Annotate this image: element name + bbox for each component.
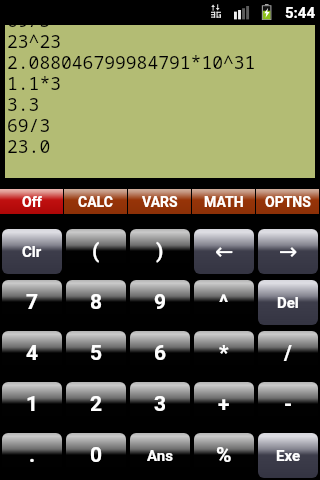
other: Battery charging [261,4,273,20]
button[interactable]: VARS [128,189,191,214]
button[interactable]: 3 [130,382,190,427]
staticText: Clr [22,243,42,261]
staticText: 3 [154,392,167,417]
button[interactable]: . [2,433,62,478]
staticText: ← [215,239,234,265]
button[interactable]: OPTNS [256,189,319,214]
button[interactable]: Off [0,189,63,214]
staticText: % [216,443,232,468]
button[interactable]: % [194,433,254,478]
staticText: - [284,392,293,417]
staticText: 0 [90,443,103,468]
button[interactable]: MATH [192,189,255,214]
other: 3G mobile data [211,4,221,18]
button[interactable]: CALC [64,189,127,214]
button[interactable]: 5 [66,331,126,376]
button[interactable]: ( [66,229,126,274]
staticText: Del [277,294,299,312]
staticText: ) [156,239,164,264]
button[interactable]: Move left [194,229,254,274]
staticText: Ans [147,447,173,465]
other: Signal strength [234,6,250,20]
staticText: . [29,443,36,468]
button[interactable]: Clr [2,229,62,274]
button[interactable]: 8 [66,280,126,325]
button[interactable]: - [258,382,318,427]
button[interactable]: ) [130,229,190,274]
staticText: ( [92,239,100,264]
button[interactable]: 6 [130,331,190,376]
staticText: 5:44 [285,4,316,22]
staticText: 8 [90,290,103,315]
staticText: 9 [154,290,167,315]
staticText: 4 [26,341,39,366]
button[interactable]: + [194,382,254,427]
button[interactable]: 1 [2,382,62,427]
staticText: MATH [204,194,244,210]
button[interactable]: ^ [194,280,254,325]
staticText: 69/3 23^23 2.088046799984791*10^31 1.1*3… [7,8,256,159]
staticText: Off [22,194,42,210]
staticText: 2 [90,392,103,417]
staticText: 5 [90,341,103,366]
button[interactable]: Move right [258,229,318,274]
staticText: + [218,392,230,417]
staticText: CALC [78,194,113,210]
staticText: VARS [142,194,178,210]
button[interactable]: Exe [258,433,318,478]
staticText: OPTNS [265,194,311,210]
button[interactable]: * [194,331,254,376]
button[interactable]: 9 [130,280,190,325]
staticText: * [219,341,229,366]
staticText: / [284,341,292,366]
staticText: 6 [154,341,167,366]
staticText: 1 [26,392,39,417]
staticText: → [279,239,298,265]
staticText: Exe [276,447,301,465]
button[interactable]: 7 [2,280,62,325]
button[interactable]: 4 [2,331,62,376]
button[interactable]: / [258,331,318,376]
button[interactable]: Ans [130,433,190,478]
staticText: ^ [219,290,229,315]
button[interactable]: Del [258,280,318,325]
button[interactable]: 2 [66,382,126,427]
button[interactable]: 0 [66,433,126,478]
staticText: 7 [26,290,39,315]
